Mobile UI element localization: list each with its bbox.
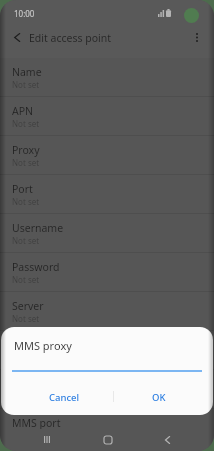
staticText: Edit access point [29,31,112,45]
button[interactable]: Navigate up [7,27,27,47]
staticText: Server [12,299,44,313]
staticText: MMSC [12,338,44,352]
staticText: MMS proxy [14,338,72,353]
button[interactable]: Password [0,253,214,292]
staticText: Not set [12,79,40,90]
button[interactable]: Home [97,429,118,450]
staticText: 10:00 [14,8,35,19]
staticText: Port [12,182,33,196]
staticText: OK [152,391,166,404]
staticText: Password [12,260,60,274]
staticText: APN [12,104,34,118]
staticText: MMS port [12,416,61,430]
button[interactable]: Recent apps [36,429,57,450]
button[interactable]: Username [0,214,214,253]
staticText: Username [12,221,64,235]
button[interactable]: More options [187,27,207,47]
button[interactable]: Server [0,292,214,331]
button[interactable]: Port [0,175,214,214]
button[interactable]: OK [114,386,203,408]
button[interactable]: APN [0,97,214,136]
staticText: Not set [12,157,40,168]
button[interactable]: MMS proxy [0,370,214,409]
staticText: Not set [12,118,40,129]
staticText: Name [12,65,42,79]
button[interactable]: Back [157,429,178,450]
staticText: Proxy [12,143,40,157]
staticText: Not set [12,235,40,246]
staticText: Cancel [49,391,80,404]
button[interactable]: MMS port [0,409,214,448]
staticText: Not set [12,274,40,285]
staticText: Not set [12,313,40,324]
button[interactable]: Proxy [0,136,214,175]
button[interactable]: Cancel [16,386,113,408]
button[interactable]: Name [0,58,214,97]
staticText: Not set [12,196,40,207]
button[interactable]: MMSC [0,331,214,370]
